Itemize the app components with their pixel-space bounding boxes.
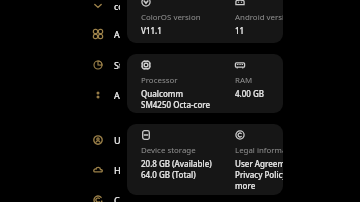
staticText: Processor [141,75,178,86]
staticText: RAM [235,75,253,86]
other: Device storage [141,130,151,140]
staticText: more [235,180,256,191]
other: Processor [141,60,151,70]
button[interactable]: Processor [127,54,283,113]
staticText: SM4250 Octa-core [141,99,211,110]
other: ColorOS version [141,0,151,7]
other: Android version [235,0,245,7]
staticText: User Agreement [235,158,283,169]
staticText: Users & accounts [114,134,120,146]
button[interactable]: connection [0,0,120,12]
other: RAM [235,60,245,70]
staticText: 11 [235,25,245,36]
button[interactable]: Apps [0,28,120,40]
staticText: Qualcomm [141,88,183,99]
staticText: Storage [114,59,120,71]
staticText: Device storage [141,145,196,156]
staticText: Android version [235,12,283,23]
staticText: V11.1 [141,25,162,36]
button[interactable]: HeyTap Cloud [0,164,120,176]
button[interactable]: Device storage [127,124,283,195]
staticText: ColorOS version [141,12,201,23]
staticText: 4.00 GB [235,88,265,99]
staticText: connection [114,0,120,12]
staticText: HeyTap Cloud [114,164,120,176]
staticText: Additional settings [114,89,120,101]
button[interactable]: Storage [0,59,120,71]
staticText: Apps [114,28,120,40]
button[interactable]: Users & accounts [0,134,120,146]
button[interactable]: Convenience tools [0,194,120,202]
button[interactable]: Additional settings [0,89,120,101]
staticText: Convenience tools [114,194,120,202]
button[interactable]: ColorOS version [127,0,283,43]
staticText: 64.0 GB (Total) [141,169,196,180]
other: Legal information [235,130,245,140]
staticText: Privacy Policy [235,169,283,180]
staticText: Legal information [235,145,283,156]
staticText: 20.8 GB (Available) [141,158,212,169]
